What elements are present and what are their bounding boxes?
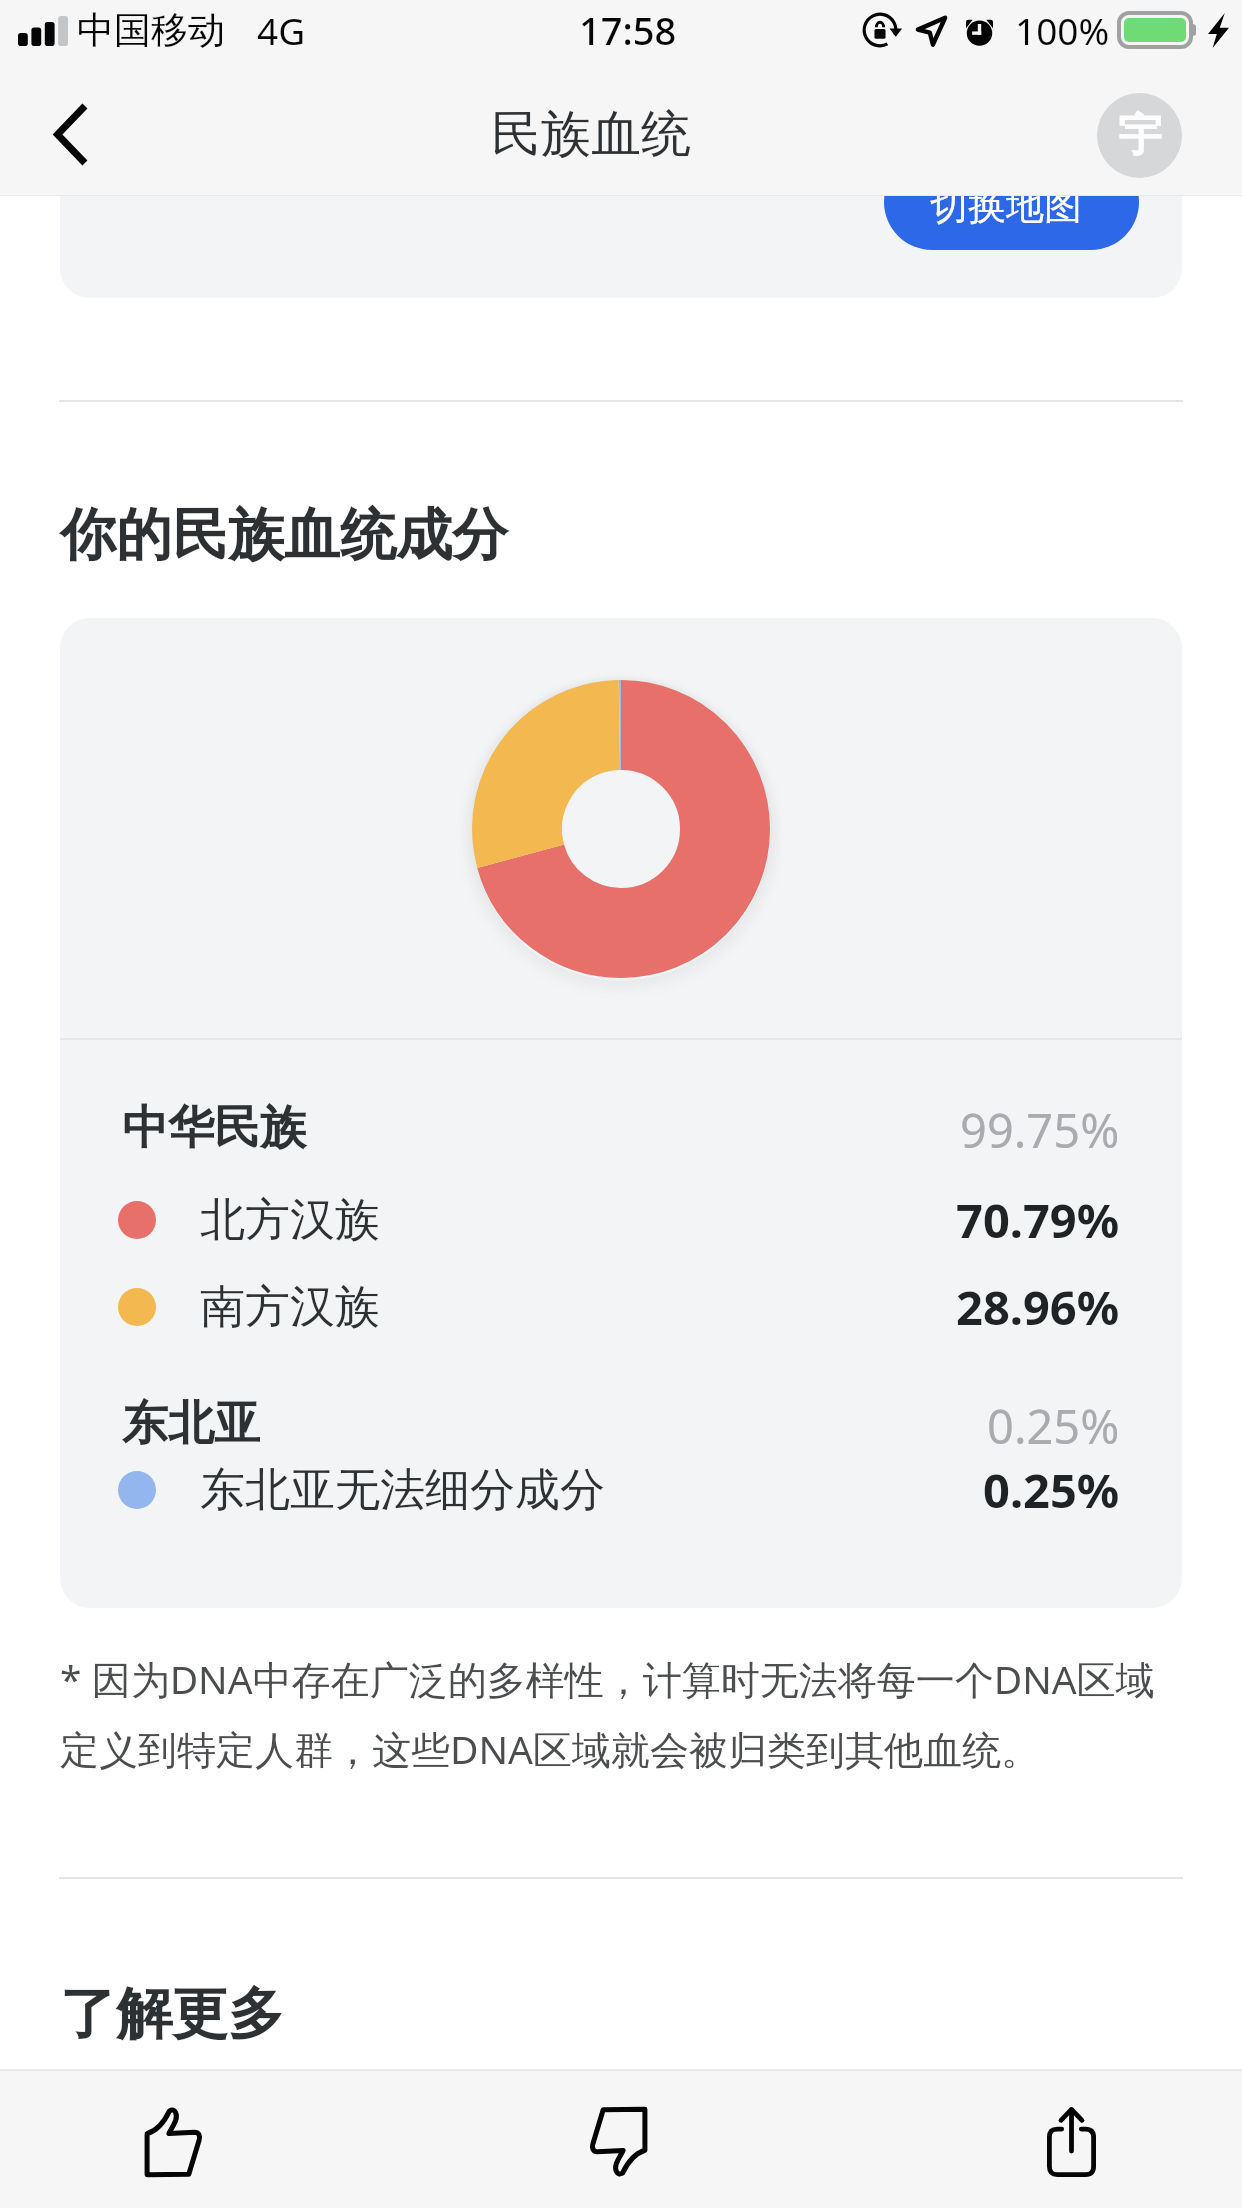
staticText: 0.25% (987, 1394, 1120, 1454)
button[interactable]: 中华民族 (122, 1098, 1120, 1158)
button[interactable]: 东北亚无法细分成分 (118, 1454, 1120, 1526)
button[interactable]: 切换地图 (884, 154, 1139, 250)
button[interactable]: Dislike (552, 2074, 688, 2208)
staticText: 4G (257, 5, 306, 55)
button[interactable]: Profile (1097, 93, 1182, 178)
staticText: 东北亚 (122, 1395, 260, 1453)
button[interactable]: 南方汉族 (118, 1271, 1120, 1343)
staticText: 99.75% (960, 1098, 1120, 1158)
staticText: * 因为DNA中存在广泛的多样性，计算时无法将每一个DNA区域定义到特定人群，这… (60, 1652, 1172, 1775)
button[interactable]: Like (104, 2074, 240, 2208)
staticText: 中华民族 (122, 1099, 306, 1157)
staticText: 你的民族血统成分 (60, 500, 508, 571)
staticText: 17:58 (579, 4, 677, 56)
staticText: 民族血统 (491, 103, 691, 166)
staticText: 了解更多 (60, 1979, 284, 2050)
staticText: 0.25% (983, 1458, 1120, 1522)
staticText: 70.79% (956, 1188, 1120, 1252)
staticText: 中国移动 (77, 7, 225, 54)
staticText: 南方汉族 (200, 1279, 380, 1336)
button[interactable]: 东北亚 (122, 1394, 1120, 1454)
staticText: 宇 (1118, 108, 1162, 163)
button[interactable]: 北方汉族 (118, 1184, 1120, 1256)
button[interactable]: Back (4, 68, 134, 195)
staticText: 100% (1015, 5, 1110, 55)
staticText: 东北亚无法细分成分 (200, 1462, 605, 1519)
staticText: 28.96% (956, 1275, 1120, 1339)
staticText: 切换地图 (930, 182, 1082, 230)
button[interactable]: Share (1003, 2074, 1139, 2208)
staticText: 北方汉族 (200, 1192, 380, 1249)
